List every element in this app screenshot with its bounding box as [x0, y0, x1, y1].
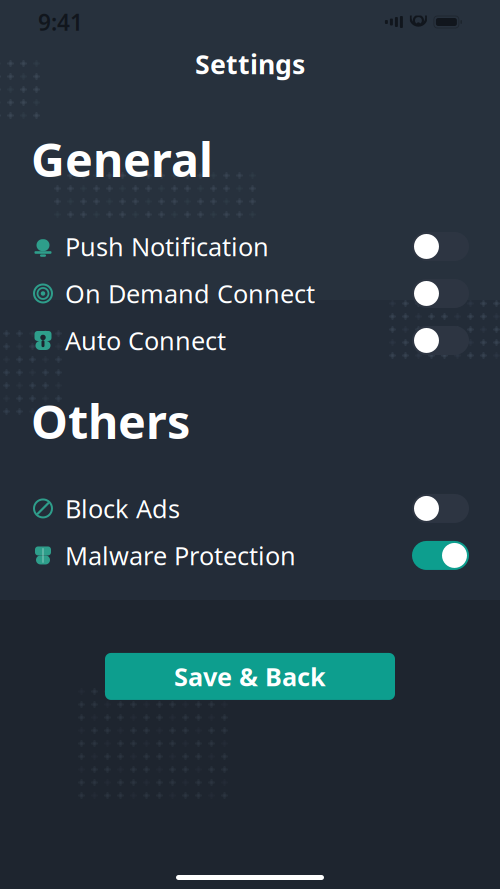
- button[interactable]: Save & Back: [105, 653, 395, 700]
- staticText: 9:41: [38, 7, 83, 37]
- staticText: Settings: [195, 46, 305, 82]
- staticText: Auto Connect: [65, 324, 226, 357]
- staticText: On Demand Connect: [65, 277, 315, 310]
- button[interactable]: Block Ads: [0, 485, 500, 532]
- staticText: Malware Protection: [65, 539, 296, 572]
- staticText: Save & Back: [174, 660, 326, 693]
- staticText: General: [31, 128, 213, 190]
- button[interactable]: Auto Connect: [0, 317, 500, 364]
- button[interactable]: Malware Protection: [0, 532, 500, 579]
- staticText: Others: [31, 390, 190, 452]
- button[interactable]: Push Notification: [0, 223, 500, 270]
- staticText: Push Notification: [65, 230, 269, 263]
- button[interactable]: On Demand Connect: [0, 270, 500, 317]
- staticText: Block Ads: [65, 492, 180, 525]
